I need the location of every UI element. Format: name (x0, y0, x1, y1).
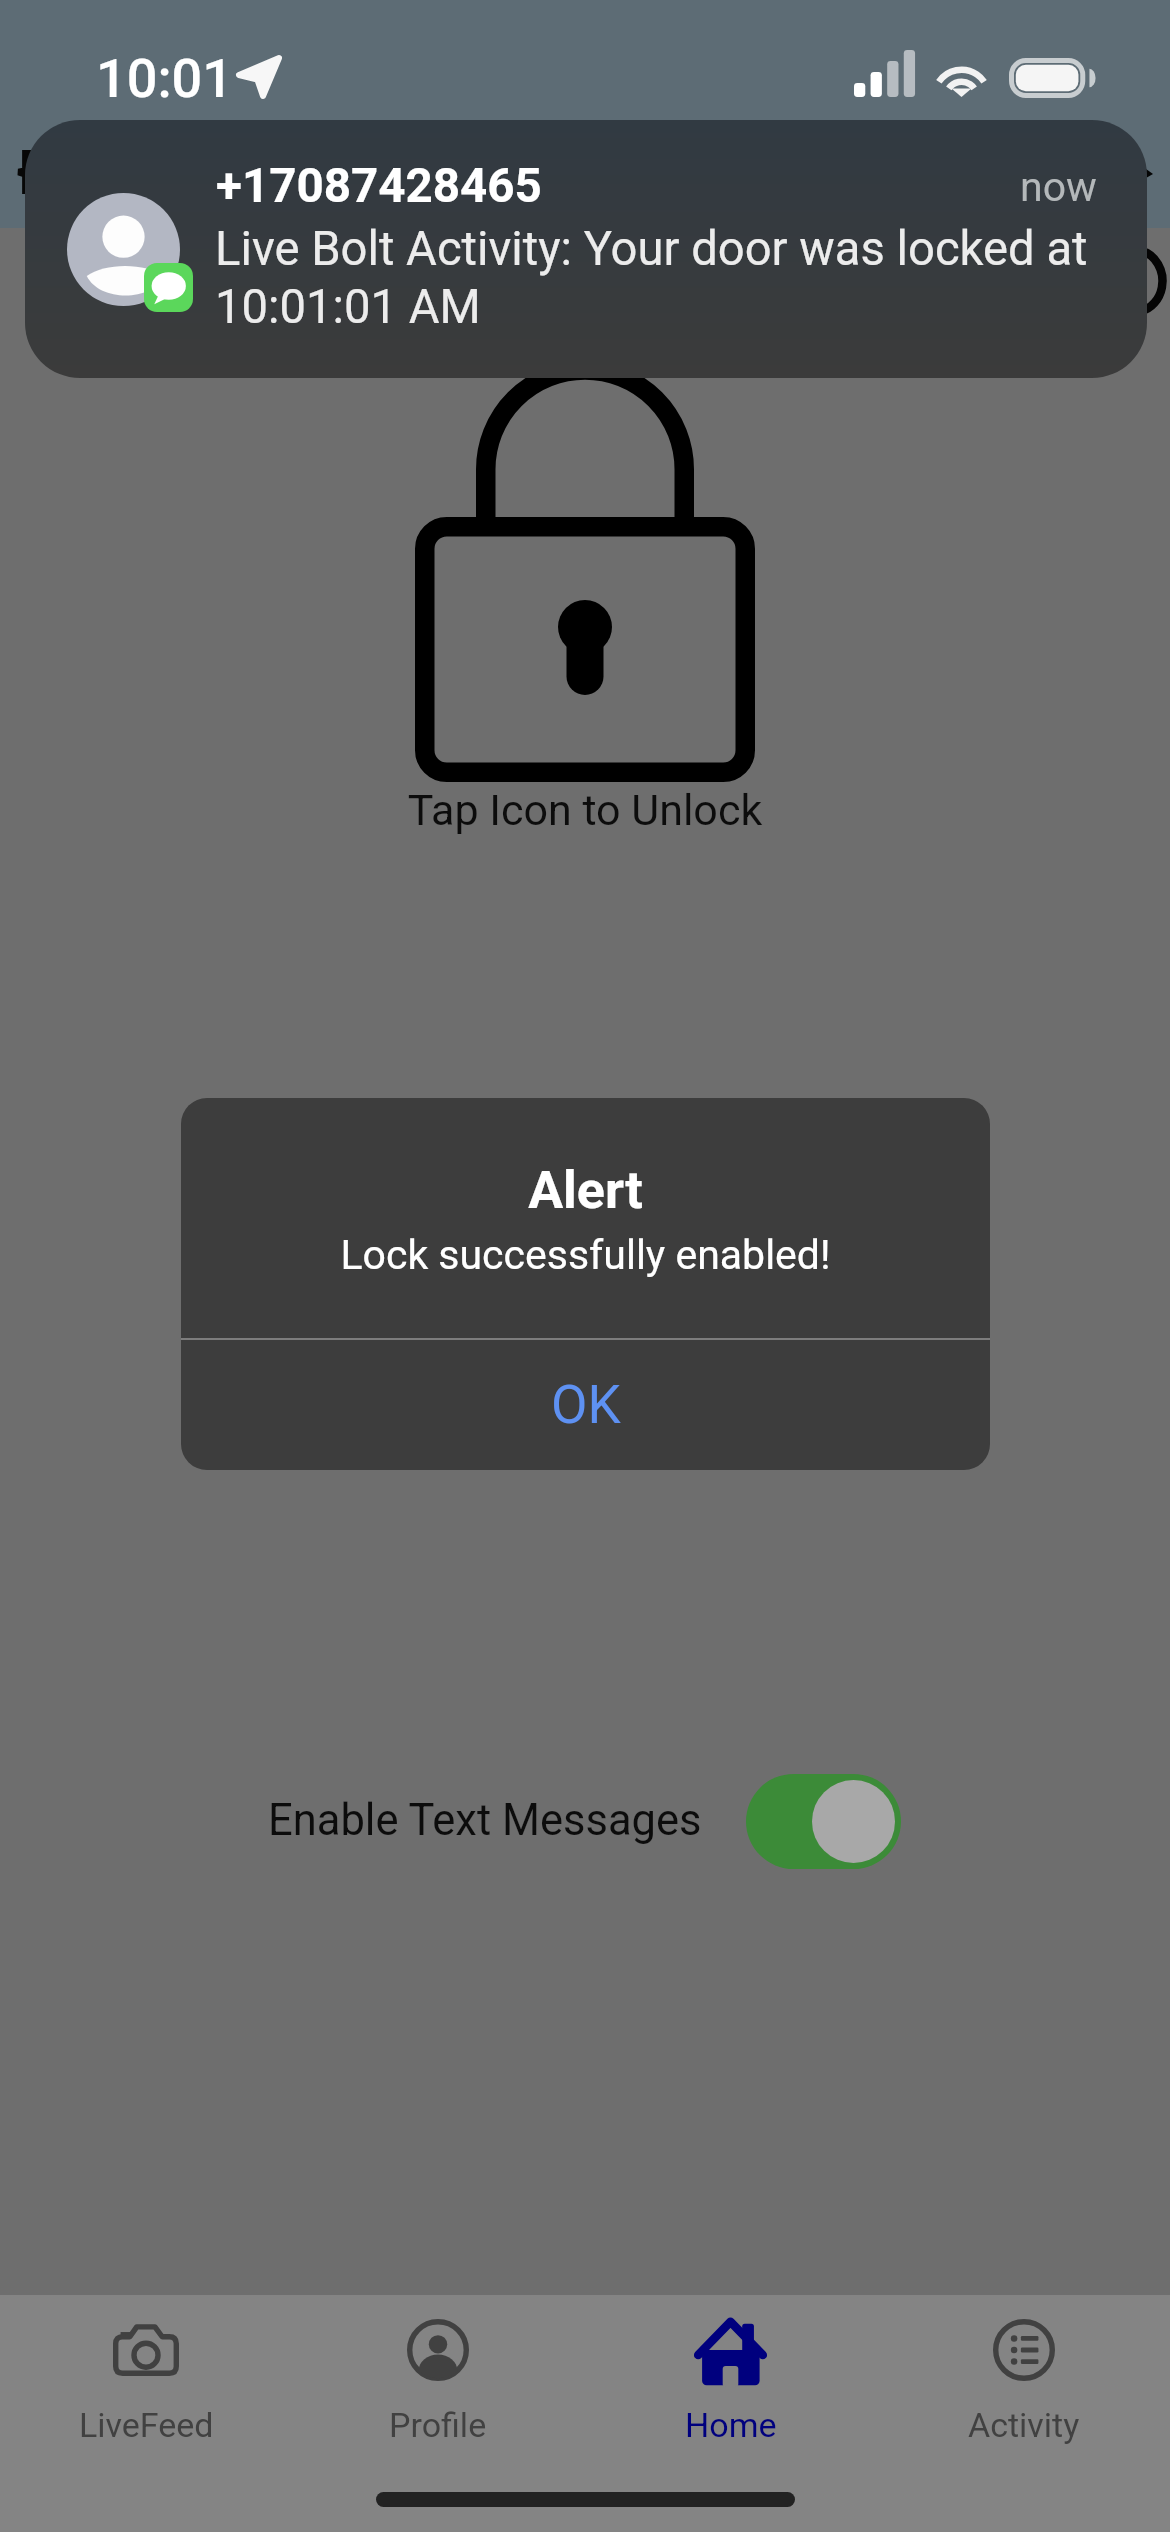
button[interactable]: Activity (877, 2295, 1170, 2445)
staticText: Profile (389, 2405, 487, 2445)
staticText: +17087428465 (216, 158, 542, 214)
button[interactable]: Home (584, 2295, 877, 2445)
staticText: Enable Text Messages (268, 1795, 702, 1846)
staticText: LiveFeed (79, 2405, 214, 2445)
staticText: OK (551, 1374, 621, 1436)
staticText: Lock successfully enabled! (181, 1231, 990, 1279)
button[interactable]: Profile (292, 2295, 584, 2445)
staticText: Live Bolt Activity: Your door was locked… (215, 221, 1110, 335)
staticText: Alert (181, 1160, 990, 1221)
button[interactable]: +17087428465 (25, 120, 1147, 378)
button[interactable]: OK (181, 1340, 990, 1470)
staticText: Home (685, 2405, 777, 2445)
button[interactable]: LiveFeed (0, 2295, 292, 2445)
button[interactable]: Enable Text Messages (746, 1774, 901, 1869)
staticText: Tap Icon to Unlock (0, 785, 1170, 835)
staticText: Activity (968, 2405, 1080, 2445)
button[interactable]: Tap Icon to Unlock (404, 355, 766, 787)
staticText: now (1020, 163, 1097, 211)
staticText: 10:01 (96, 47, 234, 110)
